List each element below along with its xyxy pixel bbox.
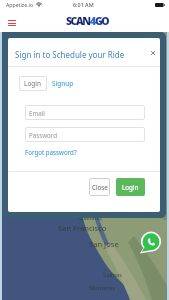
staticText: Login [24,79,42,88]
button[interactable]: Login [19,76,47,91]
staticText: Close [92,183,108,191]
staticText: Appetize.io [6,1,34,8]
button[interactable]: Email [25,105,145,120]
staticText: San Jose [89,239,119,249]
button[interactable]: Menu [8,20,16,26]
button[interactable]: Password [25,127,145,142]
staticText: Salinas [103,271,123,279]
staticText: Password [29,131,57,139]
button[interactable]: Forgot password? [25,148,77,156]
staticText: Login [122,183,139,191]
button[interactable]: Close [89,178,110,196]
staticText: Monterey [89,284,116,292]
button[interactable]: Login [116,178,145,196]
button[interactable]: Signup [49,76,77,91]
staticText: 4 [90,14,95,28]
staticText: SCAN [66,14,90,28]
staticText: Oakland [79,214,102,222]
button[interactable]: Close dialog [147,47,158,58]
staticText: San Francisco [58,223,107,233]
staticText: Sign in to Schedule your Ride [15,49,125,60]
staticText: 6:01 AM [73,1,94,8]
button[interactable]: Chat on WhatsApp [140,231,162,253]
staticText: GO [95,14,109,28]
staticText: Signup [52,79,74,88]
staticText: Email [29,109,45,117]
staticText: Forgot password? [25,148,77,156]
